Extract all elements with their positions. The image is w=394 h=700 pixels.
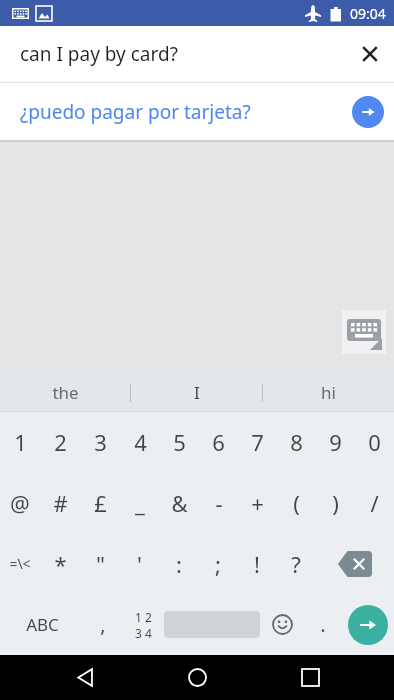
staticText: _	[135, 488, 145, 518]
staticText: .	[320, 611, 326, 638]
button[interactable]: 9	[316, 412, 355, 472]
button[interactable]: ?	[276, 533, 315, 594]
staticText: 9	[329, 427, 342, 457]
staticText: ¿puedo pagar por tarjeta?	[20, 99, 251, 125]
button[interactable]: &	[160, 472, 199, 533]
staticText: :	[176, 549, 182, 579]
button[interactable]: /	[355, 472, 394, 533]
staticText: 5	[173, 427, 186, 457]
button[interactable]: )	[316, 472, 355, 533]
staticText: ABC	[26, 613, 59, 636]
button[interactable]: Back	[57, 655, 113, 700]
staticText: I	[194, 381, 200, 404]
button[interactable]: @	[0, 472, 40, 533]
staticText: #	[53, 488, 68, 518]
staticText: 3 4	[135, 625, 152, 641]
staticText: 0	[368, 427, 381, 457]
staticText: 1 2	[135, 609, 152, 625]
staticText: 2	[54, 427, 67, 457]
button[interactable]: Recents	[282, 655, 338, 700]
button[interactable]: '	[120, 533, 159, 594]
button[interactable]: 7	[238, 412, 277, 472]
button[interactable]: :	[159, 533, 198, 594]
button[interactable]: (	[277, 472, 316, 533]
staticText: can I pay by card?	[20, 41, 178, 67]
button[interactable]: Clear	[346, 30, 394, 78]
staticText: the	[52, 381, 79, 404]
staticText: 6	[212, 427, 225, 457]
button[interactable]: Enter	[348, 605, 388, 645]
button[interactable]: =\<	[0, 533, 40, 594]
staticText: 09:04	[350, 4, 386, 23]
button[interactable]: 0	[355, 412, 394, 472]
button[interactable]: #	[40, 472, 80, 533]
button[interactable]: "	[80, 533, 120, 594]
button[interactable]: Use translation	[352, 96, 384, 128]
staticText: '	[137, 549, 142, 579]
button[interactable]: ;	[198, 533, 237, 594]
staticText: 8	[290, 427, 303, 457]
staticText: +	[251, 488, 264, 518]
button[interactable]: 4	[120, 412, 160, 472]
staticText: 4	[134, 427, 147, 457]
staticText: "	[96, 549, 105, 579]
staticText: -	[215, 488, 223, 518]
button[interactable]: the	[0, 374, 130, 411]
staticText: ;	[215, 549, 221, 579]
staticText: ,	[100, 611, 106, 638]
button[interactable]: hi	[263, 374, 394, 411]
staticText: 1	[14, 427, 27, 457]
staticText: hi	[321, 381, 336, 404]
button[interactable]: Change keyboard	[342, 310, 386, 354]
staticText: 7	[251, 427, 264, 457]
staticText: (	[293, 488, 300, 518]
staticText: /	[370, 488, 379, 518]
staticText: )	[332, 488, 339, 518]
staticText: £	[94, 488, 107, 518]
button[interactable]: ABC	[0, 594, 84, 655]
staticText: @	[10, 488, 30, 518]
staticText: 3	[94, 427, 107, 457]
staticText: !	[254, 549, 260, 579]
button[interactable]: 1	[0, 412, 40, 472]
staticText: ?	[291, 549, 301, 579]
button[interactable]: 6	[199, 412, 238, 472]
button[interactable]: .	[304, 594, 342, 655]
button[interactable]: 2	[40, 412, 80, 472]
button[interactable]: Home	[169, 655, 225, 700]
staticText: &	[171, 488, 188, 518]
staticText: *	[54, 549, 67, 579]
staticText: =\<	[9, 554, 31, 573]
button[interactable]: *	[40, 533, 80, 594]
button[interactable]: -	[199, 472, 238, 533]
button[interactable]: _	[120, 472, 160, 533]
button[interactable]: ,	[84, 594, 122, 655]
button[interactable]: Emoji	[260, 594, 304, 655]
button[interactable]: 5	[160, 412, 199, 472]
button[interactable]: !	[237, 533, 276, 594]
button[interactable]: 3	[80, 412, 120, 472]
button[interactable]: 8	[277, 412, 316, 472]
button[interactable]: +	[238, 472, 277, 533]
button[interactable]: I	[131, 374, 262, 411]
button[interactable]: £	[80, 472, 120, 533]
button[interactable]: Numbers	[122, 594, 164, 655]
button[interactable]: Backspace	[315, 533, 394, 594]
